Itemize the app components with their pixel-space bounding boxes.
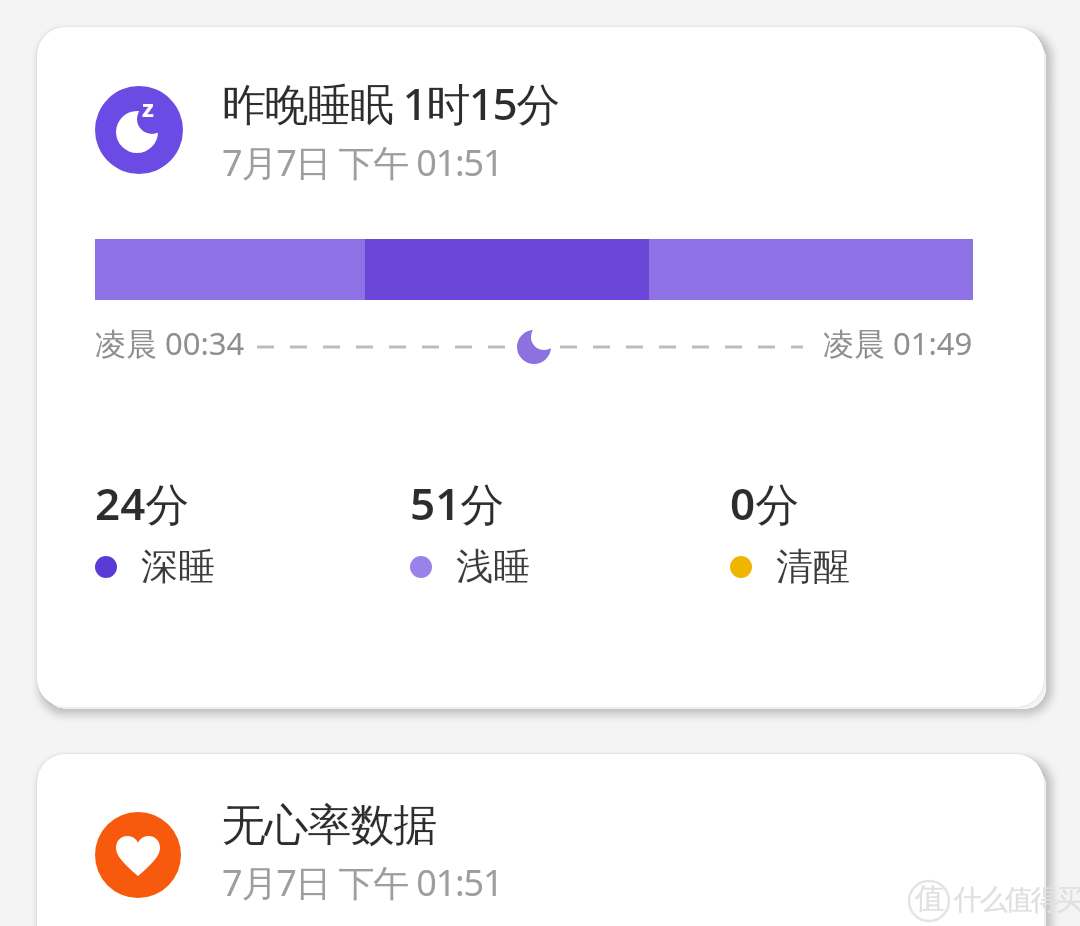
staticText: 24分 <box>95 473 190 533</box>
staticText: 清醒 <box>776 543 850 590</box>
staticText: 无心率数据 <box>222 798 437 853</box>
staticText: 浅睡 <box>456 543 530 590</box>
staticText: 凌晨 01:49 <box>823 322 973 364</box>
button[interactable]: 无心率数据 <box>37 754 1044 926</box>
staticText: 0分 <box>730 473 800 533</box>
staticText: 51分 <box>410 473 505 533</box>
staticText: 7月7日 下午 01:51 <box>222 138 503 187</box>
staticText: 值 <box>915 880 944 917</box>
staticText: 凌晨 00:34 <box>95 322 245 364</box>
staticText: 昨晚睡眠 1时15分 <box>222 73 559 133</box>
staticText: 深睡 <box>141 543 215 590</box>
button[interactable]: z <box>37 27 1044 707</box>
staticText: 什么值得买 <box>954 882 1080 917</box>
staticText: z <box>142 91 154 124</box>
staticText: 7月7日 下午 01:51 <box>222 858 503 907</box>
